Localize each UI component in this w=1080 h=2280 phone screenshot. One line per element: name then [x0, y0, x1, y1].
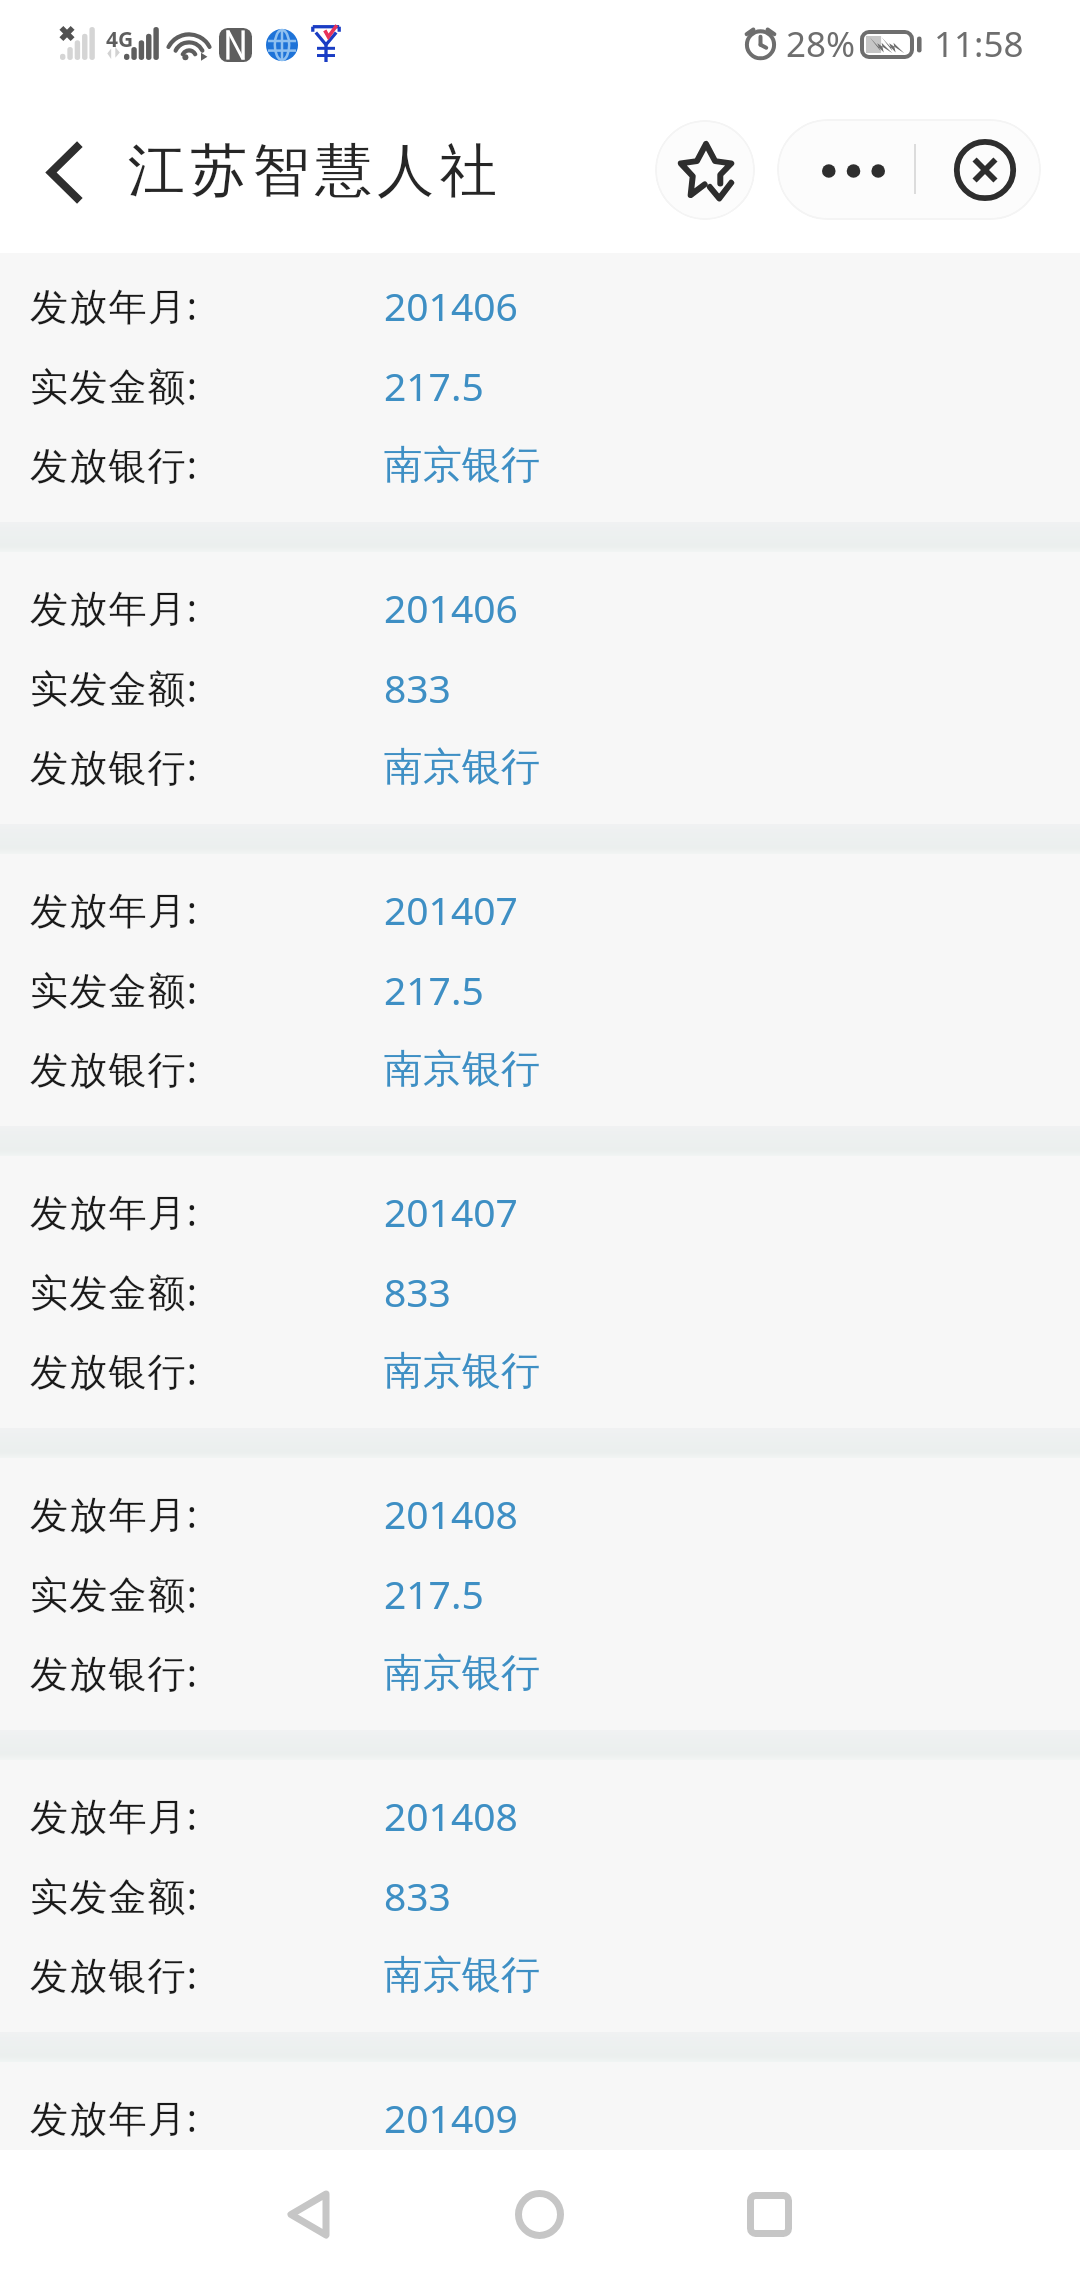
button[interactable]: Favorite	[655, 120, 755, 220]
button[interactable]: Close	[916, 119, 1041, 220]
button[interactable]: More options	[777, 119, 914, 220]
staticText: 南京银行	[384, 742, 540, 791]
staticText: 南京银行	[384, 1346, 540, 1395]
button[interactable]: 发放年月:	[0, 1461, 1080, 1730]
staticText: 南京银行	[384, 1950, 540, 1999]
staticText: 201406	[384, 279, 518, 332]
staticText: 发放银行:	[30, 1344, 199, 1396]
staticText: 201406	[384, 581, 518, 634]
staticText: 217.5	[384, 359, 484, 412]
staticText: 江苏智慧人社	[128, 135, 502, 207]
staticText: 201407	[384, 883, 518, 936]
button[interactable]: Back	[249, 2150, 369, 2280]
staticText: 833	[384, 1869, 451, 1922]
button[interactable]: 发放年月:	[0, 2065, 1080, 2175]
button[interactable]: 发放年月:	[0, 857, 1080, 1126]
staticText: 发放银行:	[30, 438, 199, 490]
staticText: 28%	[786, 20, 856, 68]
staticText: 201409	[384, 2091, 518, 2144]
staticText: 833	[384, 661, 451, 714]
staticText: 217.5	[384, 1567, 484, 1620]
staticText: 实发金额:	[30, 661, 199, 713]
button[interactable]: 发放年月:	[0, 1159, 1080, 1428]
button[interactable]: Home	[480, 2150, 600, 2280]
staticText: 发放年月:	[30, 883, 199, 935]
staticText: 833	[384, 1265, 451, 1318]
staticText: 发放年月:	[30, 1185, 199, 1237]
staticText: 实发金额:	[30, 963, 199, 1015]
staticText: 南京银行	[384, 1044, 540, 1093]
button[interactable]: Recent apps	[709, 2150, 829, 2280]
staticText: 实发金额:	[30, 1869, 199, 1921]
staticText: 201408	[384, 1487, 518, 1540]
staticText: 201407	[384, 1185, 518, 1238]
staticText: 发放年月:	[30, 1789, 199, 1841]
staticText: 4G	[106, 25, 134, 54]
staticText: 实发金额:	[30, 359, 199, 411]
button[interactable]: 发放年月:	[0, 1763, 1080, 2032]
staticText: 发放银行:	[30, 1948, 199, 2000]
staticText: 发放银行:	[30, 1042, 199, 1094]
button[interactable]: 发放年月:	[0, 555, 1080, 824]
staticText: 11:58	[934, 20, 1024, 68]
staticText: 发放年月:	[30, 279, 199, 331]
staticText: 南京银行	[384, 1648, 540, 1697]
staticText: 实发金额:	[30, 1567, 199, 1619]
staticText: 发放年月:	[30, 2091, 199, 2143]
button[interactable]: Back	[18, 103, 110, 199]
staticText: 发放银行:	[30, 740, 199, 792]
staticText: 实发金额:	[30, 1265, 199, 1317]
staticText: 发放银行:	[30, 1646, 199, 1698]
button[interactable]: 发放年月:	[0, 253, 1080, 522]
staticText: 发放年月:	[30, 1487, 199, 1539]
staticText: 南京银行	[384, 440, 540, 489]
staticText: 发放年月:	[30, 581, 199, 633]
staticText: 201408	[384, 1789, 518, 1842]
staticText: 217.5	[384, 963, 484, 1016]
